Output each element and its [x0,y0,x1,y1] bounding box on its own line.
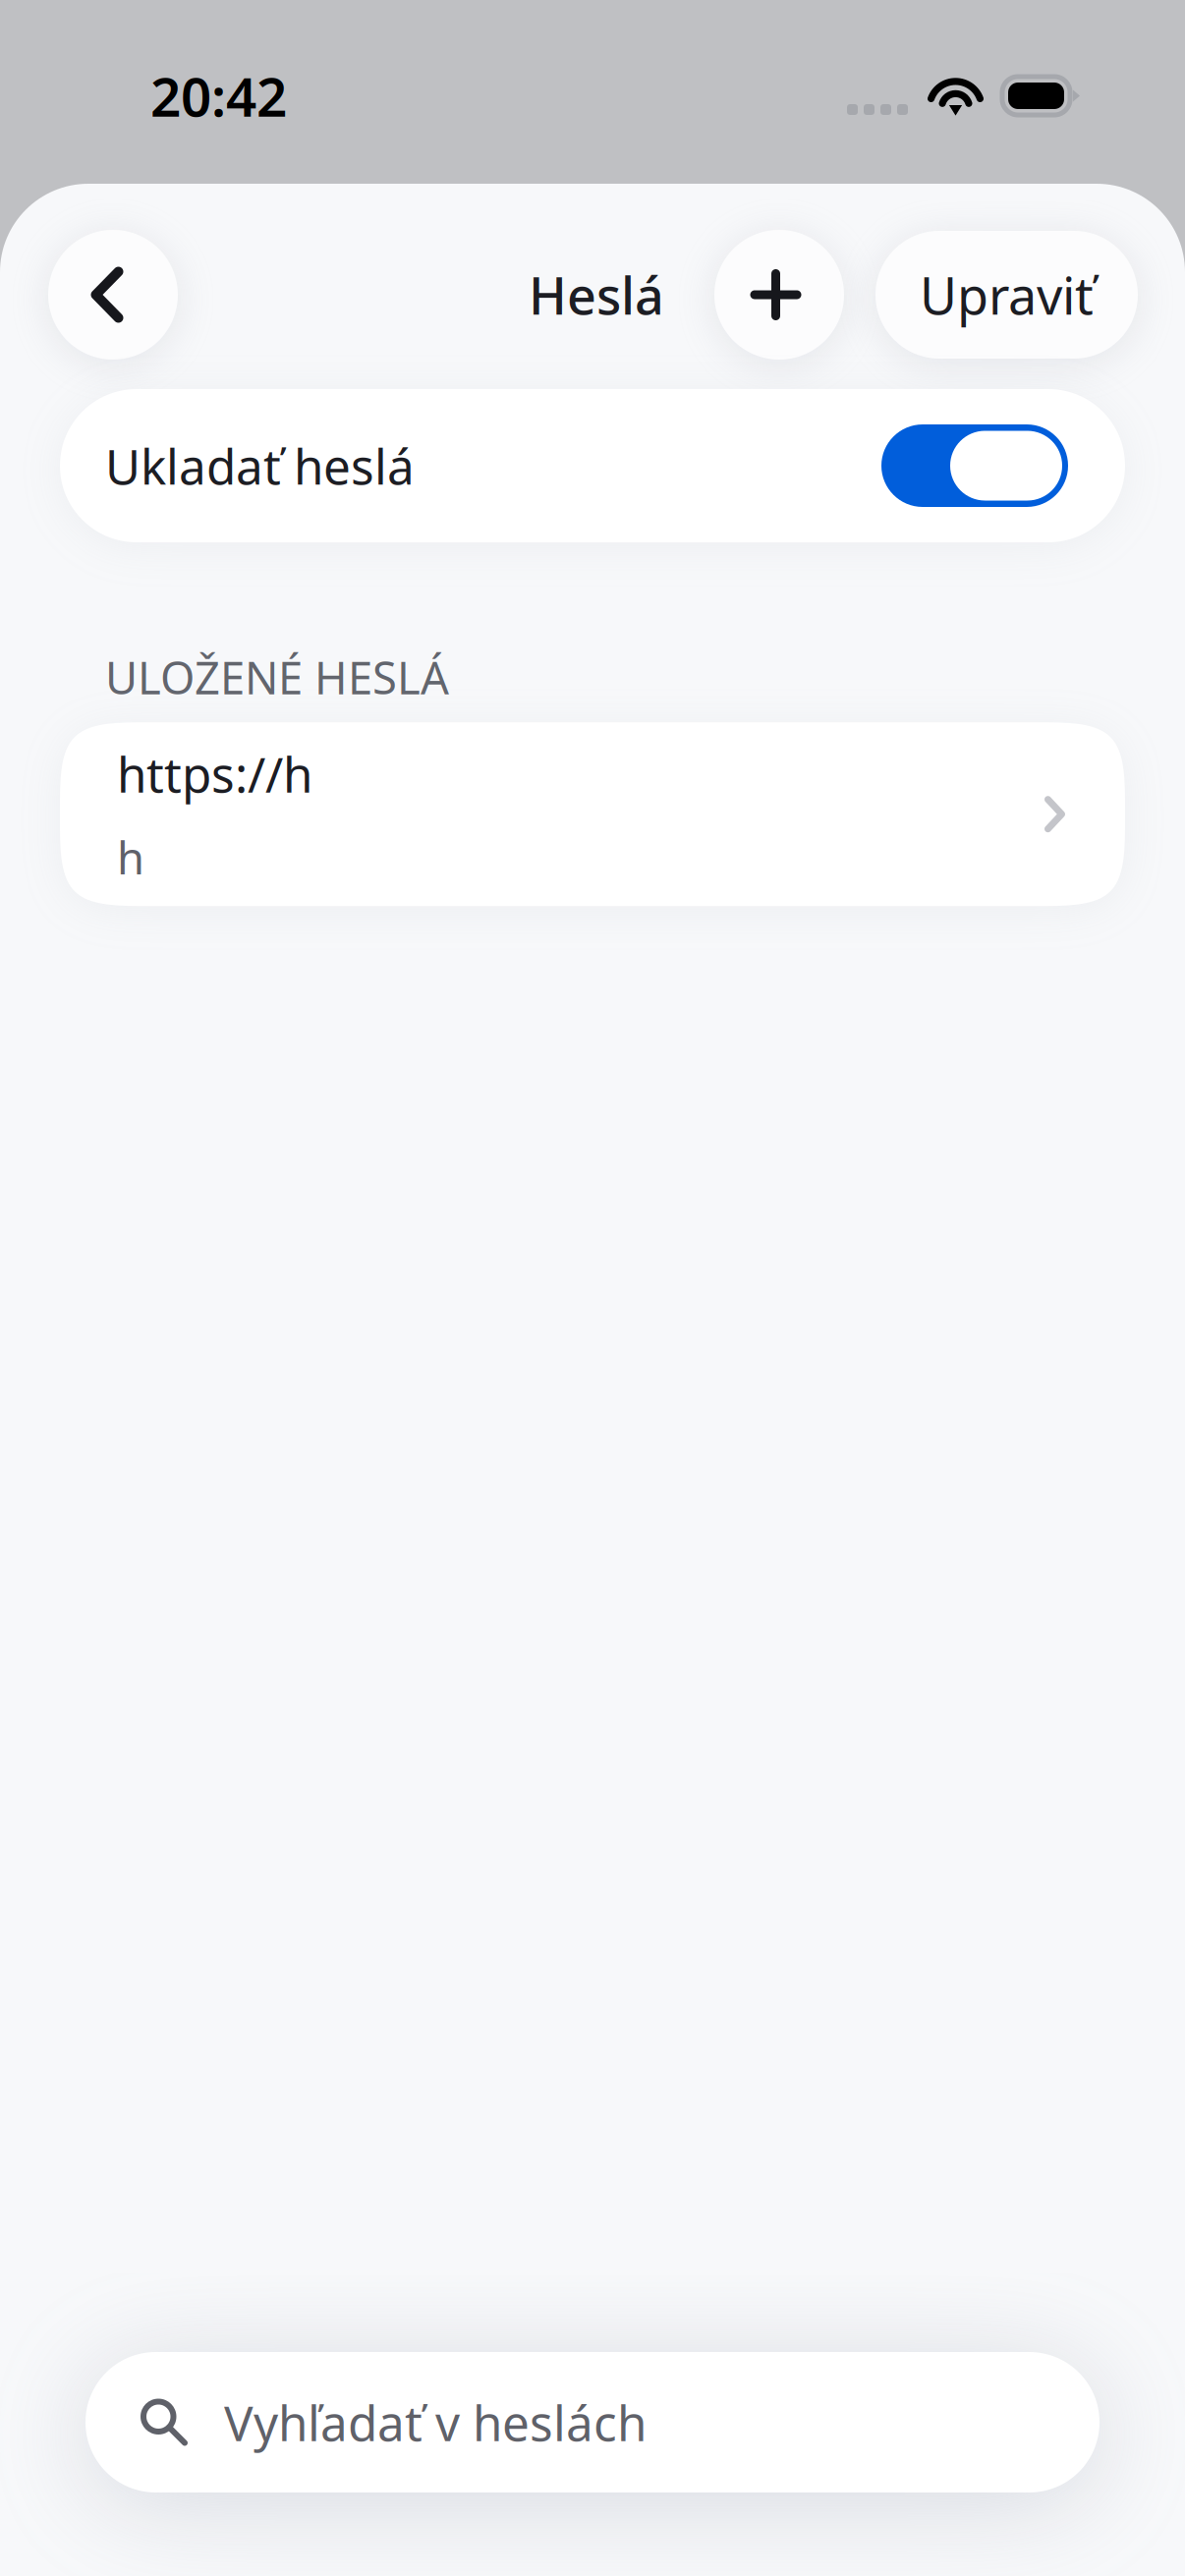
staticText: https://h [117,742,312,806]
staticText: ULOŽENÉ HESLÁ [105,647,449,707]
staticText: Ukladať heslá [105,433,415,498]
staticText: h [117,828,144,887]
button[interactable]: Vyhľadať v heslách [85,2352,1100,2492]
staticText: Vyhľadať v heslách [224,2390,647,2454]
staticText: Upraviť [920,261,1094,329]
staticText: Heslá [529,261,664,329]
staticText: 20:42 [150,60,287,131]
button[interactable]: Pridať heslo [714,230,844,360]
button[interactable]: https://h [60,722,1125,906]
button[interactable]: Upraviť [875,231,1138,359]
button[interactable]: Ukladať heslá [60,389,1125,542]
button[interactable]: Späť [48,230,178,360]
